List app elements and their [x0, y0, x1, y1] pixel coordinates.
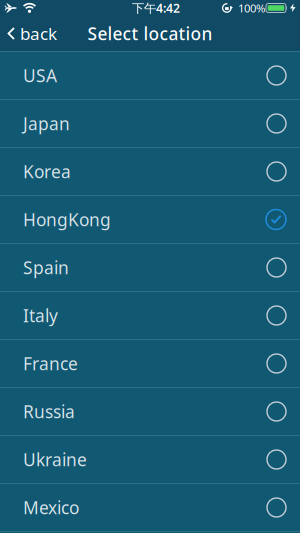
staticText: USA	[23, 64, 57, 87]
button[interactable]: Russia	[0, 388, 300, 436]
staticText: 下午4:42	[132, 0, 180, 16]
staticText: Mexico	[23, 496, 79, 519]
staticText: Ukraine	[23, 448, 87, 471]
button[interactable]: Korea	[0, 148, 300, 196]
button[interactable]: France	[0, 340, 300, 388]
button[interactable]: Ukraine	[0, 436, 300, 484]
staticText: 100%	[238, 0, 265, 16]
staticText: Korea	[23, 160, 71, 183]
staticText: Russia	[23, 400, 75, 423]
button[interactable]: Japan	[0, 100, 300, 148]
staticText: Japan	[23, 112, 70, 135]
staticText: France	[23, 352, 78, 375]
staticText: Select location	[87, 22, 212, 45]
staticText: HongKong	[23, 208, 111, 231]
button[interactable]: Italy	[0, 292, 300, 340]
button[interactable]: USA	[0, 52, 300, 100]
button[interactable]: Mexico	[0, 484, 300, 532]
staticText: back	[20, 22, 57, 45]
button[interactable]: back	[0, 16, 57, 51]
button[interactable]: Spain	[0, 244, 300, 292]
button[interactable]: HongKong	[0, 196, 300, 244]
staticText: Italy	[23, 304, 58, 327]
staticText: Spain	[23, 256, 69, 279]
